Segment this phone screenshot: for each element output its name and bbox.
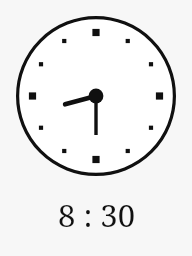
staticText: 8 : 30	[58, 194, 135, 236]
